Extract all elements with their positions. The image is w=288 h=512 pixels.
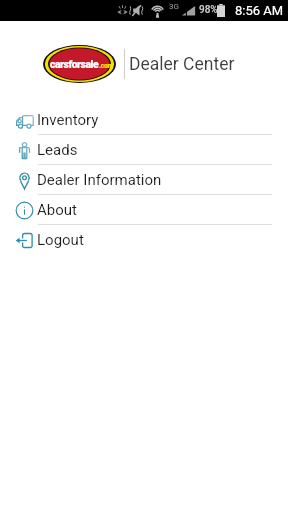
staticText: Logout [37,231,84,249]
staticText: 98% [199,4,218,16]
staticText: About [37,201,77,219]
button[interactable]: Inventory [0,105,288,135]
button[interactable]: Leads [0,135,288,165]
staticText: .com [99,62,113,70]
staticText: carsforsale [50,58,99,70]
button[interactable]: Logout [0,225,288,255]
staticText: Dealer Center [129,54,235,75]
button[interactable]: Dealer Information [0,165,288,195]
staticText: Leads [37,141,78,159]
staticText: Inventory [37,111,99,129]
button[interactable]: About [0,195,288,225]
staticText: Dealer Information [37,171,162,189]
staticText: 8:56 AM [235,3,284,18]
staticText: 3G [169,2,179,11]
